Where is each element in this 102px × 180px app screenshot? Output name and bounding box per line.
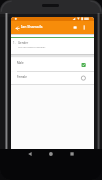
button[interactable]: [13, 23, 22, 32]
staticText: 1.: [13, 41, 16, 45]
button[interactable]: Female: [11, 72, 94, 84]
staticText: Ian Shamails: [21, 24, 43, 29]
staticText: Female: [17, 75, 27, 79]
button[interactable]: [72, 24, 78, 31]
button[interactable]: [68, 150, 76, 158]
button[interactable]: [26, 150, 34, 158]
button[interactable]: Male: [11, 58, 94, 71]
staticText: Are you male or female?: [18, 45, 46, 48]
staticText: Male: [17, 61, 24, 65]
staticText: Gender: [18, 41, 29, 45]
button[interactable]: [81, 23, 87, 32]
button[interactable]: [47, 150, 55, 158]
